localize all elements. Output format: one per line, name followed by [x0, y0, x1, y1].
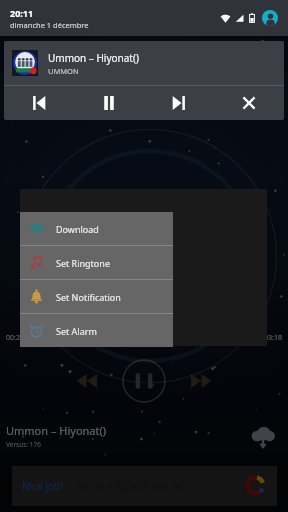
staticText: 00:21 — [6, 333, 24, 343]
button[interactable] — [30, 328, 258, 348]
staticText: Download — [56, 223, 99, 235]
button[interactable]: Fast forward — [180, 359, 224, 403]
button[interactable]: Set Ringtone — [20, 246, 173, 279]
button[interactable]: Set Alarm — [20, 314, 173, 347]
button[interactable]: Close — [214, 86, 284, 120]
staticText: dimanche 1 décembre — [10, 20, 89, 30]
staticText: Versus: 176 — [6, 440, 41, 449]
button[interactable]: Download — [246, 419, 280, 453]
staticText: Ummon – Hiyonat() — [48, 51, 139, 65]
button[interactable]: Ummon – Hiyonat() — [4, 41, 284, 85]
button[interactable]: Download — [20, 212, 173, 245]
staticText: 20:11 — [10, 7, 34, 19]
staticText: Set Alarm — [56, 325, 97, 337]
staticText: UMMON — [48, 66, 79, 76]
button[interactable]: Nice job! — [12, 466, 277, 506]
button[interactable]: Account — [262, 10, 278, 26]
staticText: Set Ringtone — [56, 257, 110, 269]
staticText: Ummon – Hiyonat() — [6, 423, 107, 438]
staticText: Nice job! — [22, 479, 63, 493]
staticText: 03:18 — [264, 333, 282, 343]
button[interactable]: Pause — [74, 86, 144, 120]
button[interactable]: Set Notification — [20, 280, 173, 313]
staticText: Set Notification — [56, 291, 121, 303]
button[interactable]: Next — [144, 86, 214, 120]
button[interactable]: Previous — [4, 86, 74, 120]
button[interactable]: Rewind — [64, 359, 108, 403]
button[interactable]: Play or pause — [118, 355, 170, 407]
